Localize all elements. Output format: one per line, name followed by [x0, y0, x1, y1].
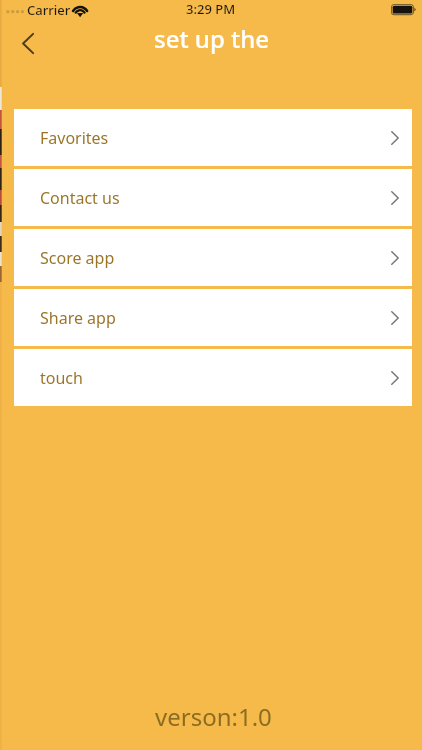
staticText: Favorites [40, 127, 109, 149]
staticText: Contact us [40, 187, 120, 209]
button[interactable]: Favorites [14, 109, 412, 166]
staticText: Score app [40, 247, 115, 269]
button[interactable]: Contact us [14, 169, 412, 226]
staticText: touch [40, 367, 83, 389]
button[interactable]: Back [7, 20, 49, 64]
button[interactable]: Share app [14, 289, 412, 346]
staticText: set up the [154, 22, 270, 55]
staticText: 3:29 PM [186, 0, 236, 18]
staticText: Share app [40, 307, 116, 329]
staticText: Carrier [27, 1, 71, 19]
staticText: verson:1.0 [155, 700, 272, 733]
button[interactable]: touch [14, 349, 412, 406]
button[interactable]: Score app [14, 229, 412, 286]
